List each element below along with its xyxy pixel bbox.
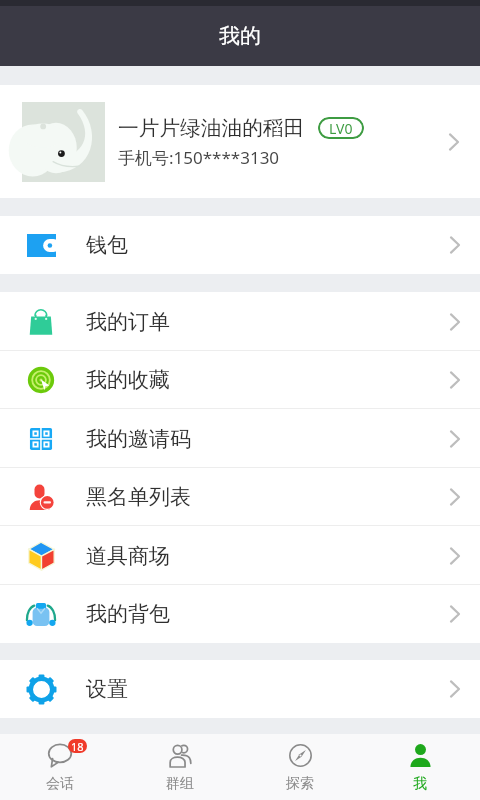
staticText: 探索 <box>286 775 314 793</box>
staticText: LV0 <box>329 119 353 138</box>
button[interactable]: 道具商场 <box>0 526 480 585</box>
button[interactable]: 探索 <box>240 734 360 800</box>
button[interactable]: 我的收藏 <box>0 351 480 409</box>
button[interactable]: 我的订单 <box>0 292 480 351</box>
button[interactable]: 个人资料 <box>0 85 480 198</box>
button[interactable]: 黑名单列表 <box>0 468 480 526</box>
staticText: 18 <box>71 739 84 753</box>
staticText: 设置 <box>86 676 128 702</box>
staticText: 道具商场 <box>86 543 170 569</box>
staticText: 我的背包 <box>86 601 170 627</box>
staticText: 我的邀请码 <box>86 426 191 452</box>
button[interactable]: 我 <box>360 734 480 800</box>
button[interactable]: 我的邀请码 <box>0 409 480 468</box>
button[interactable]: 我的背包 <box>0 585 480 643</box>
staticText: 我的订单 <box>86 309 170 335</box>
staticText: 钱包 <box>86 232 128 258</box>
staticText: 我 <box>413 775 427 793</box>
staticText: 一片片绿油油的稻田 <box>118 115 305 141</box>
staticText: 手机号:150****3130 <box>118 146 280 169</box>
staticText: 群组 <box>166 775 194 793</box>
staticText: 黑名单列表 <box>86 484 191 510</box>
button[interactable]: 钱包 <box>0 216 480 274</box>
staticText: 会话 <box>46 775 74 793</box>
button[interactable]: 18 <box>0 734 120 800</box>
button[interactable]: 群组 <box>120 734 240 800</box>
button[interactable]: 设置 <box>0 660 480 718</box>
staticText: 我的 <box>219 23 261 49</box>
staticText: 我的收藏 <box>86 367 170 393</box>
